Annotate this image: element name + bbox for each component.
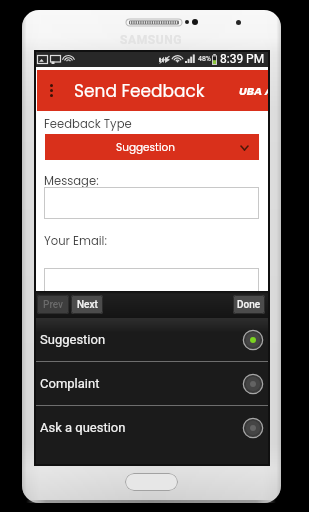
staticText: Complaint	[40, 376, 242, 391]
staticText: 48%	[198, 55, 211, 63]
staticText: Done	[237, 299, 261, 311]
staticText: Send Feedback	[74, 79, 205, 103]
button[interactable]: More options	[42, 78, 60, 104]
staticText: Feedback Type	[44, 116, 132, 132]
button[interactable]: Suggestion	[35, 318, 268, 361]
staticText: Next	[77, 299, 98, 311]
button[interactable]: Prev	[37, 295, 69, 314]
button[interactable]: Next	[71, 295, 103, 314]
staticText: UBA A	[239, 83, 268, 98]
button[interactable]: Home	[125, 473, 178, 491]
staticText: SAMSUNG	[120, 33, 183, 47]
button[interactable]: Ask a question	[35, 406, 268, 449]
staticText: 8:39 PM	[220, 52, 265, 66]
staticText: Suggestion	[116, 140, 175, 155]
staticText: Ask a question	[40, 420, 242, 435]
staticText: Suggestion	[40, 332, 242, 347]
staticText: Prev	[43, 299, 64, 311]
button[interactable]: Complaint	[35, 362, 268, 405]
button[interactable]: Suggestion	[45, 134, 259, 160]
staticText: Message:	[44, 173, 99, 189]
button[interactable]: Done	[233, 295, 265, 314]
staticText: Your Email:	[44, 233, 107, 249]
